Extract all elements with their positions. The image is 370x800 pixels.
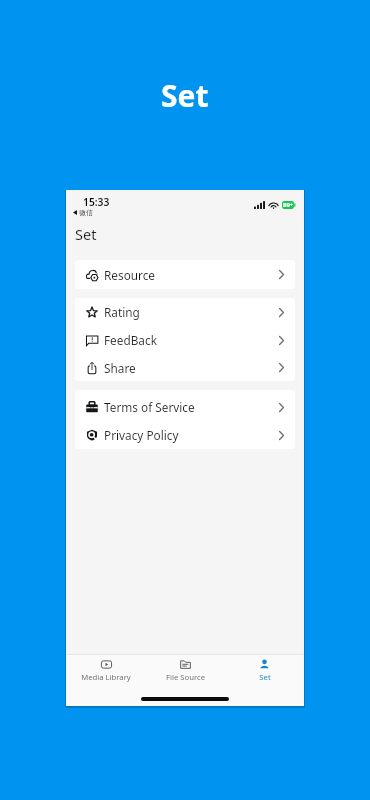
staticText: 15:33: [83, 195, 110, 209]
staticText: Privacy Policy: [104, 427, 179, 443]
staticText: FeedBack: [104, 332, 157, 348]
button[interactable]: File Source: [146, 655, 225, 686]
staticText: Set: [259, 672, 271, 682]
button[interactable]: Set: [225, 655, 304, 686]
button[interactable]: FeedBack: [75, 326, 295, 354]
staticText: Share: [104, 360, 136, 376]
button[interactable]: Share: [75, 354, 295, 381]
staticText: Rating: [104, 304, 140, 320]
staticText: File Source: [166, 672, 205, 682]
staticText: 89+: [283, 201, 294, 209]
staticText: Set: [75, 224, 97, 244]
button[interactable]: Resource: [75, 260, 295, 289]
staticText: Resource: [104, 267, 156, 283]
staticText: Media Library: [81, 672, 131, 682]
button[interactable]: Media Library: [66, 655, 146, 686]
staticText: 微信: [79, 208, 93, 217]
staticText: Set: [161, 75, 209, 116]
button[interactable]: Terms of Service: [75, 393, 295, 421]
button[interactable]: Privacy Policy: [75, 421, 295, 449]
staticText: Terms of Service: [104, 399, 195, 415]
button[interactable]: Rating: [75, 298, 295, 326]
